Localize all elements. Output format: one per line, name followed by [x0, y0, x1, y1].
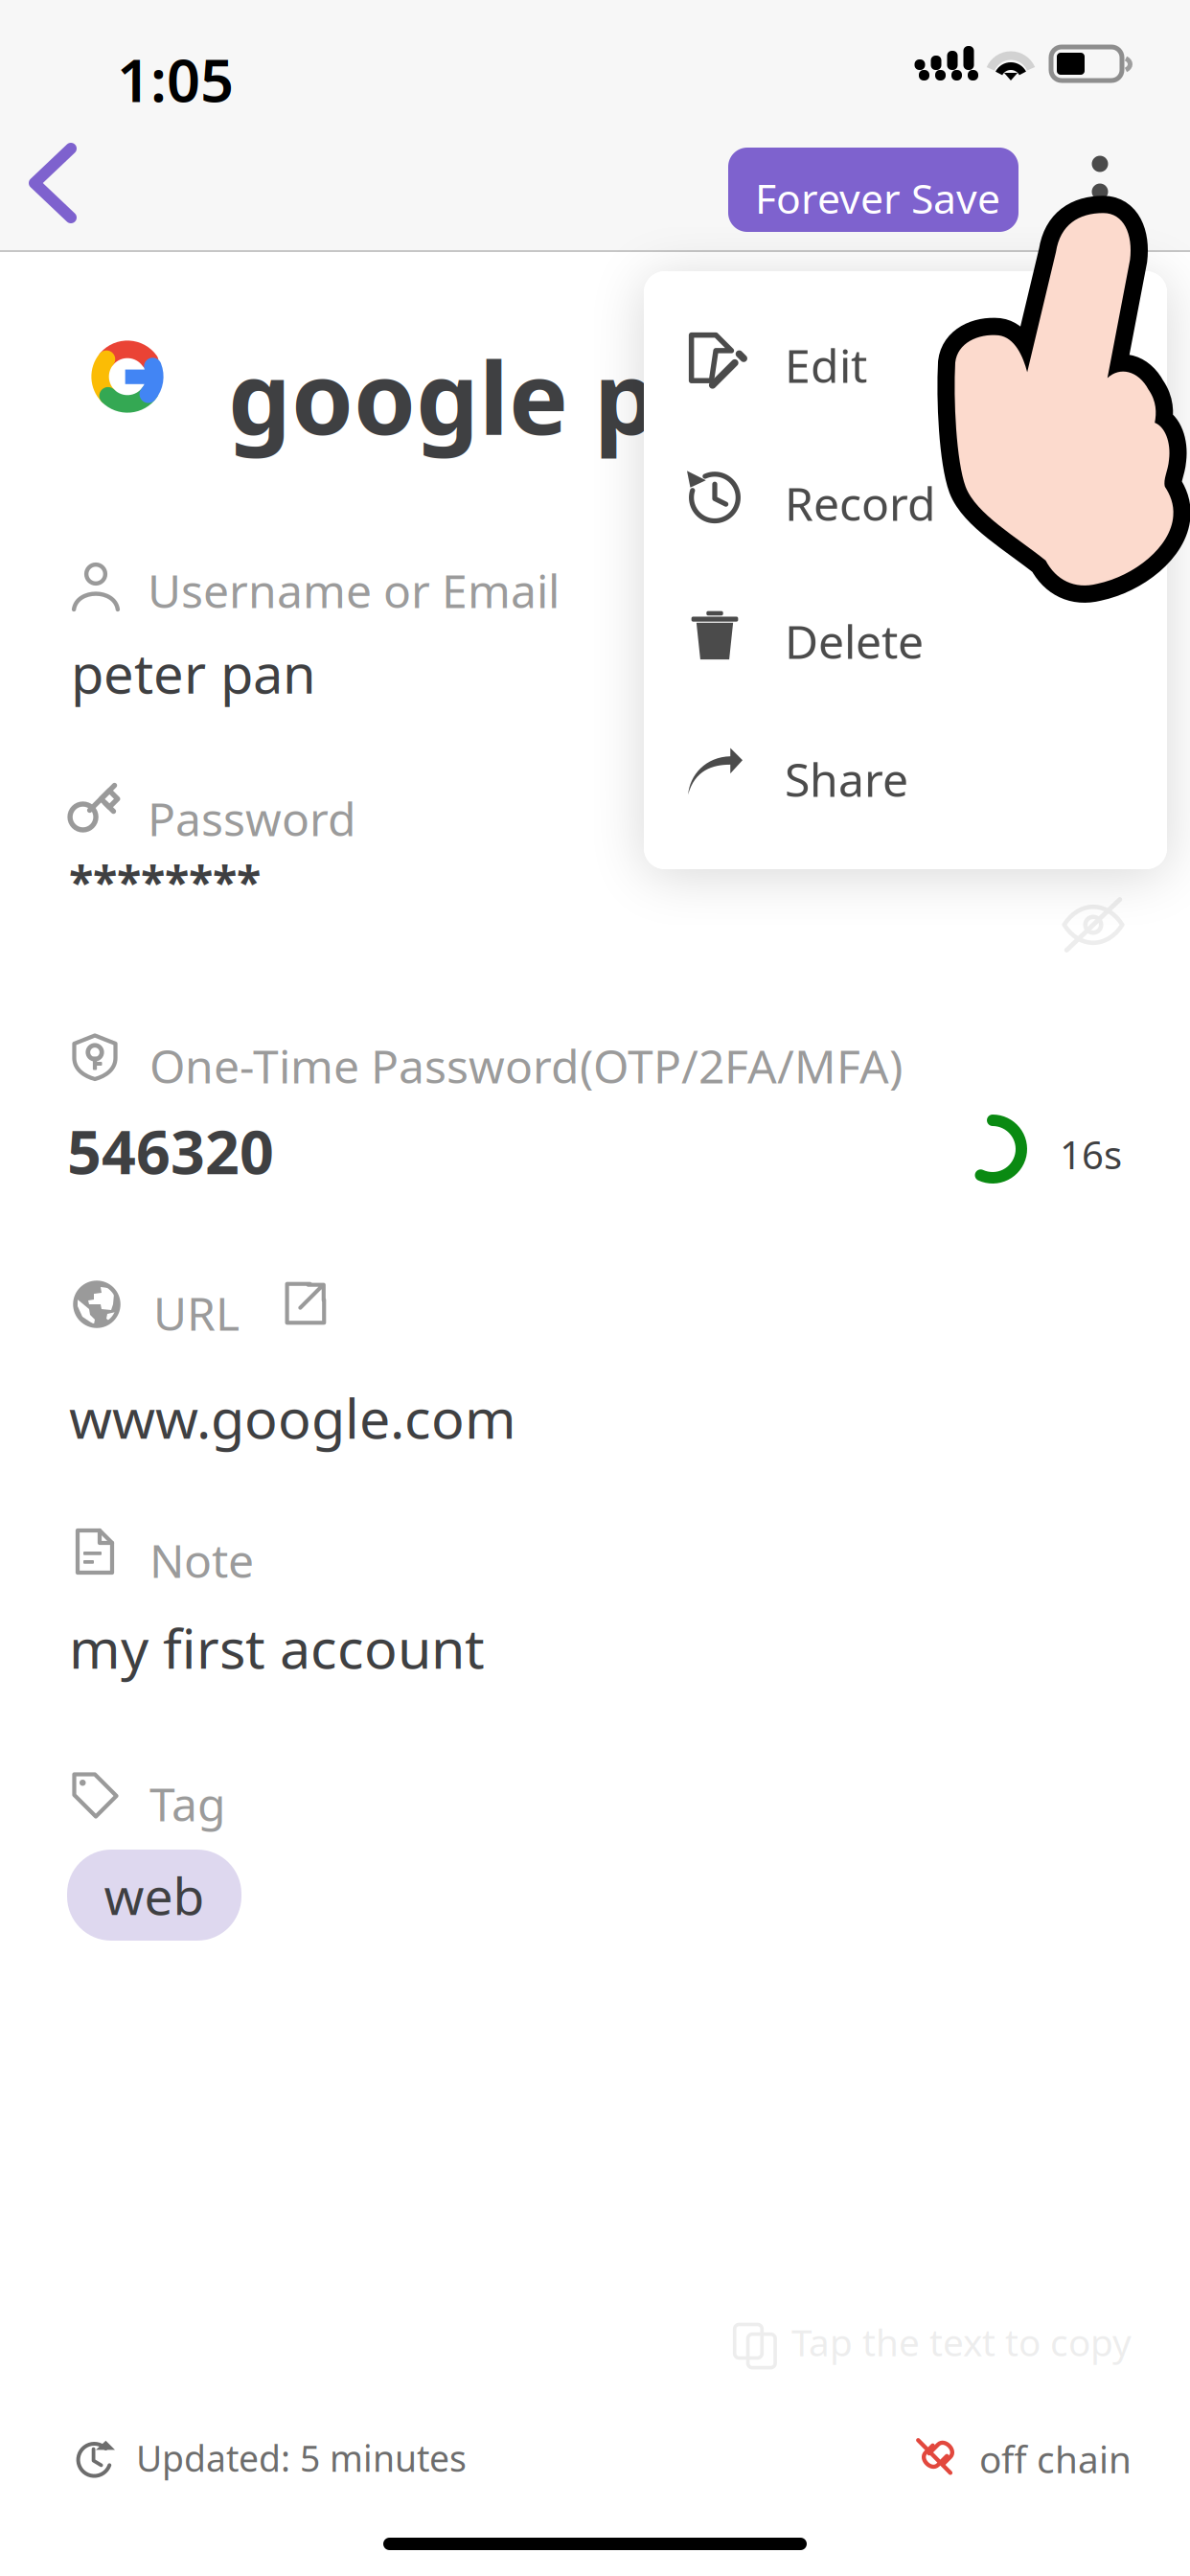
- button[interactable]: Show password: [1052, 884, 1134, 966]
- button[interactable]: Record: [644, 425, 1167, 563]
- staticText: One-Time Password(OTP/2FA/MFA): [149, 1035, 903, 1096]
- button[interactable]: Edit: [644, 287, 1167, 425]
- staticText: peter pan: [71, 637, 316, 708]
- staticText: www.google.com: [69, 1381, 516, 1454]
- staticText: Delete: [785, 610, 924, 672]
- staticText: Updated: 5 minutes: [136, 2434, 467, 2482]
- staticText: 1:05: [117, 40, 234, 118]
- button[interactable]: Share: [644, 701, 1167, 839]
- button[interactable]: my first account: [69, 1616, 471, 1679]
- staticText: Note: [149, 1529, 254, 1591]
- button[interactable]: Forever Save: [728, 148, 1018, 232]
- staticText: Share: [785, 748, 908, 810]
- button[interactable]: Back: [21, 139, 126, 244]
- button[interactable]: peter pan: [71, 642, 320, 703]
- staticText: my first account: [69, 1611, 485, 1684]
- button[interactable]: ********: [69, 853, 270, 910]
- staticText: Edit: [785, 334, 867, 396]
- staticText: google password: [228, 330, 1069, 462]
- button[interactable]: 546320: [67, 1119, 273, 1183]
- staticText: Password: [148, 788, 356, 849]
- staticText: web: [104, 1861, 205, 1929]
- staticText: Tag: [149, 1773, 226, 1834]
- staticText: URL: [153, 1282, 240, 1343]
- button[interactable]: www.google.com: [69, 1386, 519, 1449]
- staticText: ********: [69, 852, 261, 911]
- staticText: 546320: [67, 1111, 274, 1191]
- staticText: Username or Email: [148, 560, 560, 621]
- button[interactable]: Delete: [644, 563, 1167, 701]
- button[interactable]: More options: [1058, 139, 1142, 244]
- staticText: Tap the text to copy: [791, 2317, 1132, 2366]
- staticText: Record: [785, 472, 936, 534]
- button[interactable]: web: [67, 1850, 241, 1941]
- staticText: 16s: [1060, 1129, 1122, 1180]
- staticText: Forever Save: [755, 171, 1000, 225]
- staticText: off chain: [979, 2434, 1132, 2483]
- button[interactable]: Open link: [276, 1275, 333, 1332]
